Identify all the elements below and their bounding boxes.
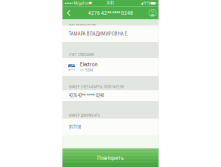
staticText: •••• 9284 [80, 68, 93, 72]
staticText: НОМЕР ДОКУМЕНТА [69, 113, 100, 117]
staticText: Electron [68, 68, 75, 71]
staticText: Повторить [97, 154, 124, 161]
button[interactable]: 4276 42** **** 0248 [62, 90, 158, 101]
button[interactable]: Повторить [62, 148, 158, 167]
button[interactable]: Back [62, 6, 74, 19]
staticText: MegaFon [73, 1, 89, 6]
staticText: ТАМАРА ВЛАДИМИРОВНА Е. [69, 31, 128, 37]
button[interactable]: Account [146, 6, 158, 19]
button[interactable]: VISA [62, 58, 158, 76]
button[interactable]: 917118 [62, 119, 158, 136]
staticText: НОМЕР СЧЕТА/КАРТЫ ПОЛУЧАТЕЛЯ [69, 85, 124, 89]
staticText: 91% [144, 1, 150, 5]
staticText: VISA [67, 63, 75, 68]
staticText: 9:41 [107, 1, 114, 6]
staticText: 4276 42** **** 0248 [69, 93, 104, 98]
button[interactable]: ТАМАРА ВЛАДИМИРОВНА Е. [62, 25, 158, 42]
staticText: Electron [80, 61, 98, 68]
staticText: ФИО ПОЛУЧАТЕЛЯ [69, 24, 96, 28]
staticText: СЧЕТ СПИСАНИЯ [69, 53, 94, 57]
staticText: 917118 [69, 124, 81, 130]
staticText: 4276 42** **** 0248 [88, 10, 133, 16]
